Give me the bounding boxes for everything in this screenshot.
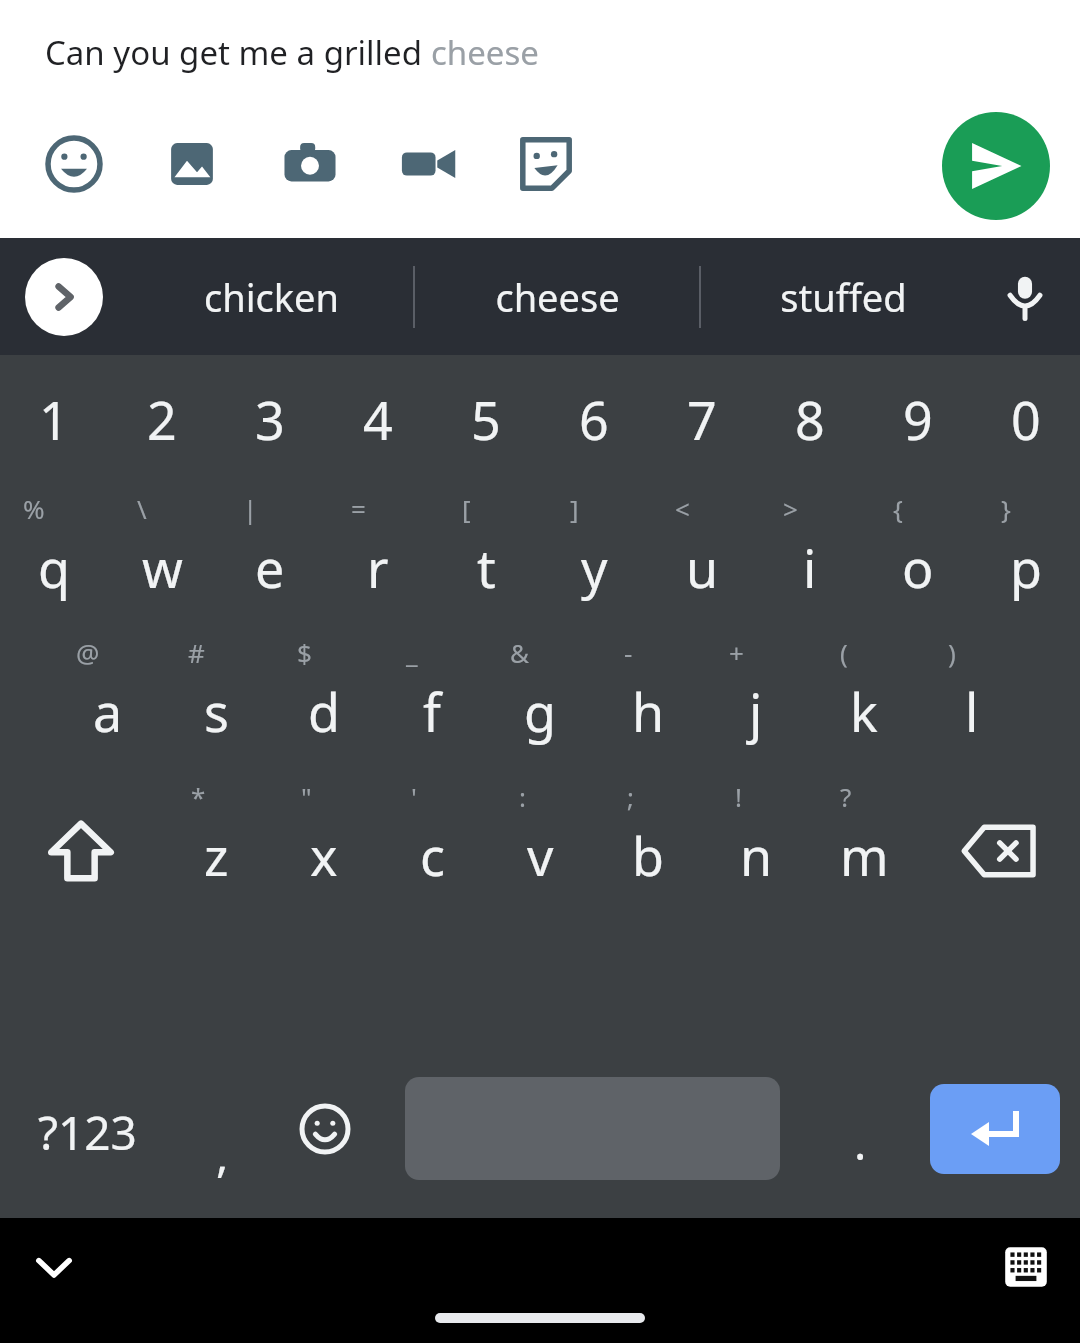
staticText: 5 <box>471 384 501 455</box>
button[interactable]: < <box>648 491 756 619</box>
staticText: q <box>38 532 70 603</box>
staticText: | <box>243 491 258 526</box>
button[interactable]: @ <box>54 635 162 763</box>
button[interactable]: % <box>0 491 108 619</box>
staticText: w <box>142 532 183 603</box>
button[interactable]: Switch keyboard <box>990 1231 1062 1303</box>
button[interactable]: Sticker <box>502 120 590 208</box>
button[interactable]: More suggestions <box>25 258 103 336</box>
button[interactable]: | <box>216 491 324 619</box>
staticText: cheese <box>495 271 620 323</box>
staticText: Can you get me a grilled <box>45 30 431 75</box>
button[interactable]: Comma <box>175 1062 270 1202</box>
staticText: 8 <box>795 384 825 455</box>
button[interactable]: = <box>324 491 432 619</box>
button[interactable]: $ <box>270 635 378 763</box>
staticText: z <box>204 820 229 891</box>
button[interactable]: } <box>972 491 1080 619</box>
button[interactable]: 6 <box>540 367 648 471</box>
staticText: s <box>204 676 229 747</box>
staticText: _ <box>406 635 418 670</box>
staticText: d <box>308 676 340 747</box>
button[interactable]: Camera <box>266 120 354 208</box>
staticText: 4 <box>363 384 393 455</box>
staticText: n <box>740 820 773 891</box>
staticText: r <box>367 532 389 603</box>
button[interactable]: [ <box>432 491 540 619</box>
staticText: \ <box>137 491 147 526</box>
staticText: h <box>632 676 665 747</box>
button[interactable]: chicken <box>130 238 413 355</box>
button[interactable]: * <box>162 779 270 907</box>
button[interactable]: _ <box>378 635 486 763</box>
button[interactable]: Send <box>942 112 1050 220</box>
button[interactable]: ' <box>378 779 486 907</box>
button[interactable]: ! <box>702 779 810 907</box>
button[interactable]: 9 <box>864 367 972 471</box>
staticText: u <box>686 532 719 603</box>
button[interactable]: Backspace <box>918 779 1080 907</box>
button[interactable]: Hide keyboard <box>18 1231 90 1303</box>
button[interactable]: ; <box>594 779 702 907</box>
staticText: { <box>893 491 903 526</box>
staticText: " <box>301 779 312 814</box>
staticText: [ <box>462 491 471 526</box>
button[interactable]: Period <box>810 1062 910 1202</box>
staticText: 1 <box>39 384 69 455</box>
staticText: 6 <box>579 384 609 455</box>
button[interactable]: " <box>270 779 378 907</box>
staticText: 9 <box>903 384 933 455</box>
staticText: k <box>850 676 878 747</box>
button[interactable]: 1 <box>0 367 108 471</box>
staticText: ! <box>735 779 742 814</box>
button[interactable]: Emoji <box>30 120 118 208</box>
staticText: b <box>632 820 664 891</box>
staticText: i <box>803 532 817 603</box>
staticText: e <box>255 532 285 603</box>
button[interactable]: Emoji keyboard <box>272 1062 377 1202</box>
button[interactable]: # <box>162 635 270 763</box>
button[interactable]: Shift <box>0 779 162 907</box>
staticText: stuffed <box>780 271 907 323</box>
button[interactable]: 7 <box>648 367 756 471</box>
button[interactable]: : <box>486 779 594 907</box>
button[interactable]: stuffed <box>701 238 985 355</box>
button[interactable]: Enter <box>930 1084 1060 1174</box>
button[interactable]: 3 <box>216 367 324 471</box>
staticText: : <box>519 779 526 814</box>
staticText: < <box>675 491 690 526</box>
staticText: g <box>524 676 556 747</box>
button[interactable]: 5 <box>432 367 540 471</box>
button[interactable]: 2 <box>108 367 216 471</box>
button[interactable]: ] <box>540 491 648 619</box>
staticText: ] <box>570 491 579 526</box>
button[interactable]: { <box>864 491 972 619</box>
staticText: x <box>310 820 338 891</box>
staticText: 7 <box>687 384 717 455</box>
staticText: c <box>420 820 445 891</box>
button[interactable]: ) <box>918 635 1026 763</box>
button[interactable]: > <box>756 491 864 619</box>
button[interactable]: - <box>594 635 702 763</box>
button[interactable]: Video <box>384 120 472 208</box>
button[interactable]: \ <box>108 491 216 619</box>
staticText: v <box>527 820 554 891</box>
button[interactable]: cheese <box>415 238 699 355</box>
button[interactable]: ( <box>810 635 918 763</box>
button[interactable]: ?123 <box>0 1062 175 1202</box>
button[interactable]: + <box>702 635 810 763</box>
staticText: 2 <box>147 384 177 455</box>
button[interactable]: 8 <box>756 367 864 471</box>
staticText: = <box>351 491 366 526</box>
button[interactable]: Voice input <box>984 256 1066 338</box>
staticText: } <box>1001 491 1011 526</box>
button[interactable]: Gallery <box>148 120 236 208</box>
staticText: + <box>729 635 744 670</box>
button[interactable]: & <box>486 635 594 763</box>
button[interactable]: 0 <box>972 367 1080 471</box>
button[interactable]: ? <box>810 779 918 907</box>
button[interactable]: 4 <box>324 367 432 471</box>
staticText: ' <box>411 779 417 814</box>
staticText: @ <box>76 635 100 670</box>
